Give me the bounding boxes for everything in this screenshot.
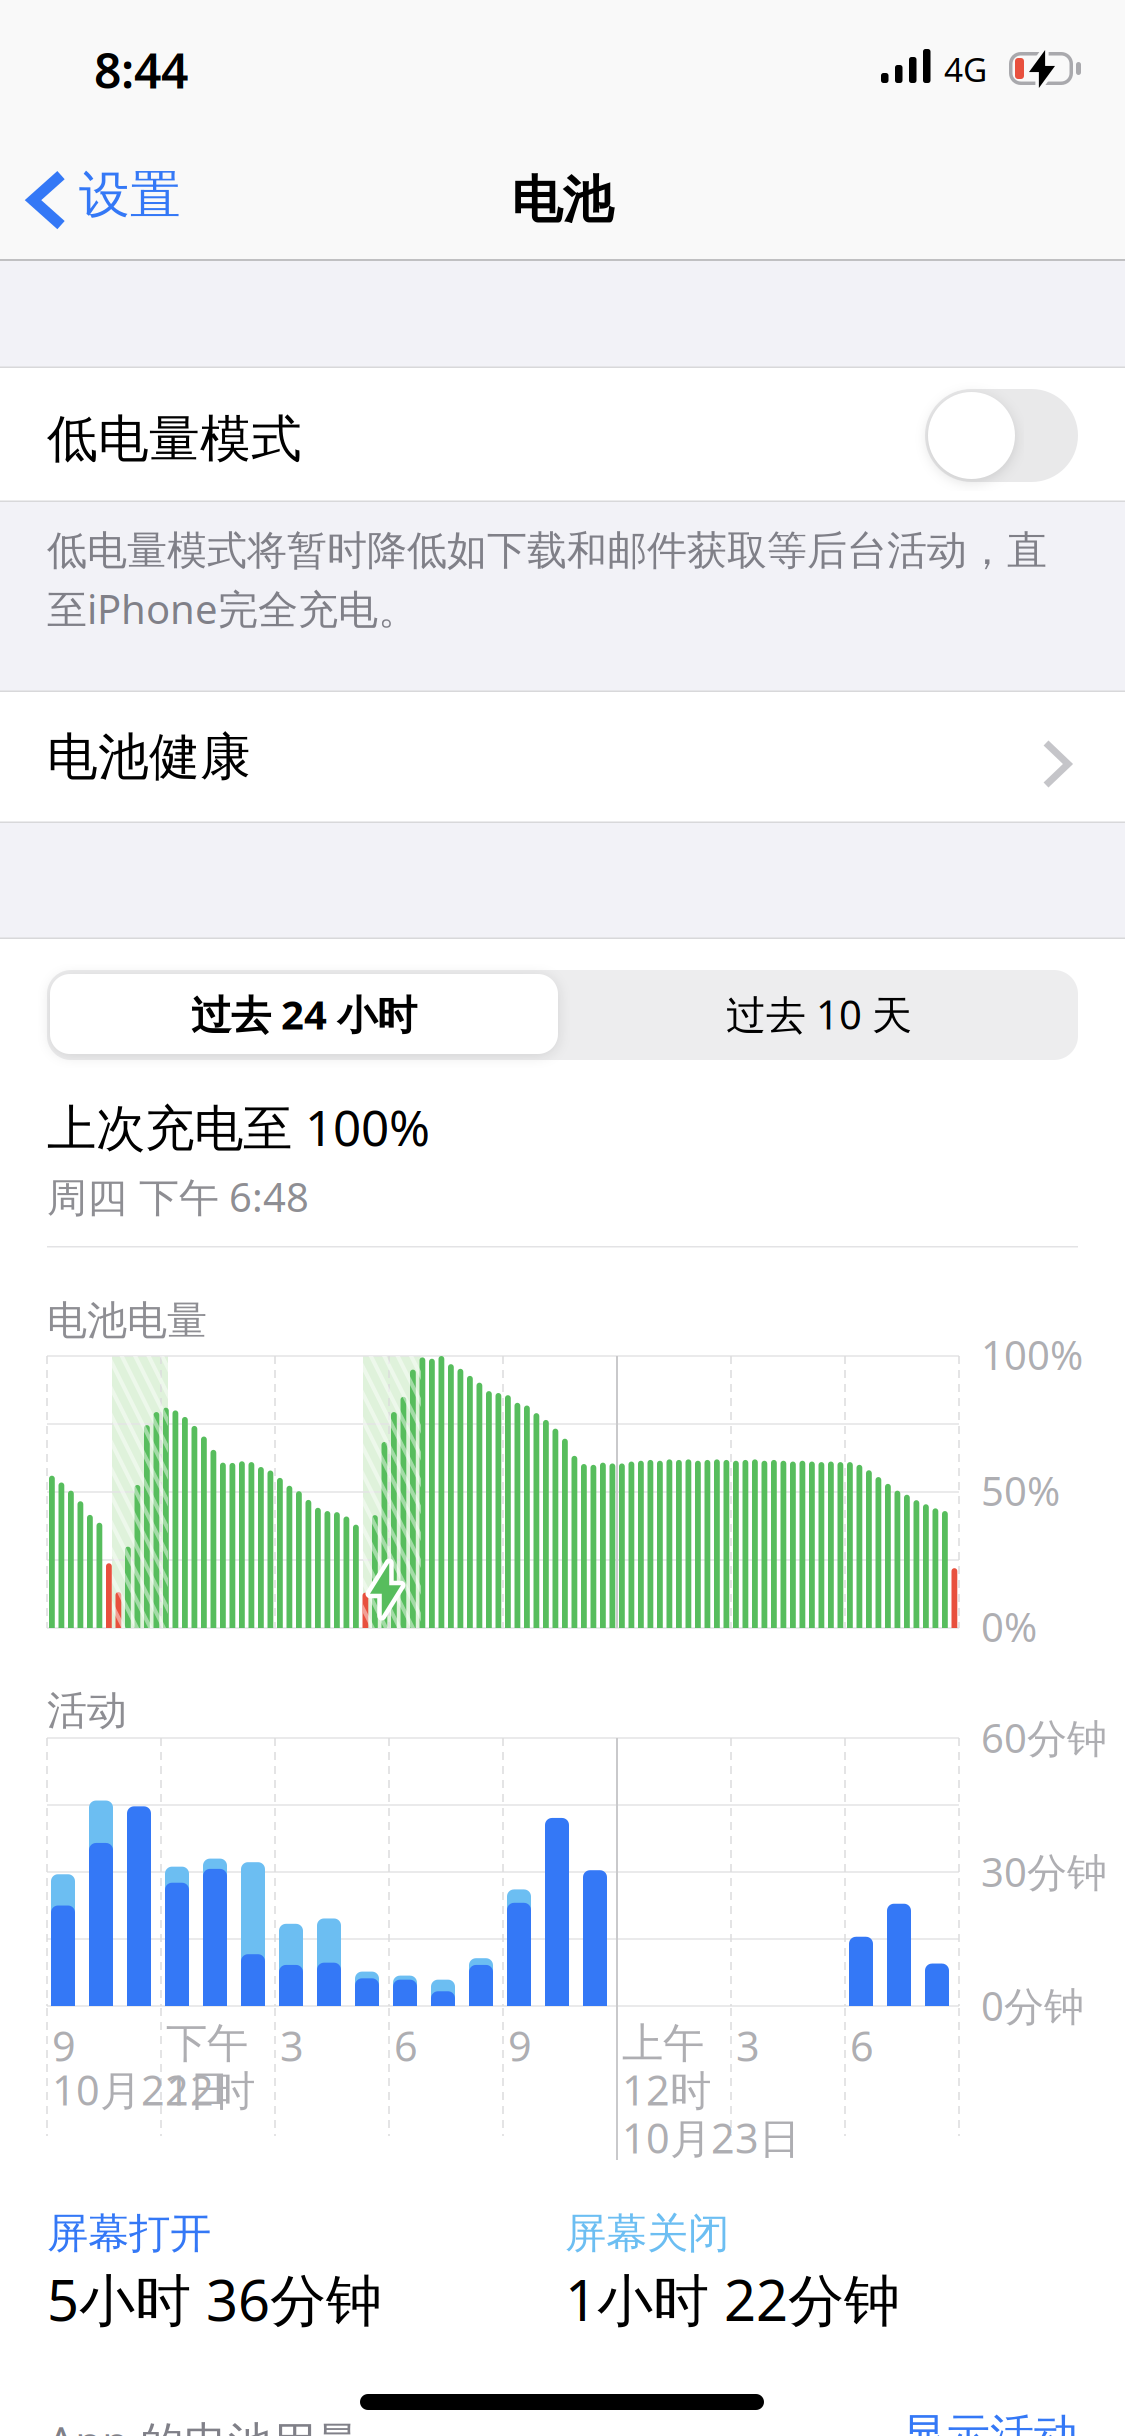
staticText: App 的电池用量 xyxy=(47,2412,360,2436)
staticText: 活动 xyxy=(47,1686,127,1735)
staticText: 12时 xyxy=(166,2062,255,2117)
staticText: 8:44 xyxy=(94,38,188,102)
staticText: 3 xyxy=(280,2018,304,2073)
staticText: 100% xyxy=(981,1328,1083,1381)
staticText: 上次充电至 100% xyxy=(47,1094,430,1159)
staticText: 过去 10 天 xyxy=(726,987,912,1040)
staticText: 低电量模式 xyxy=(47,408,302,470)
button[interactable]: 显示活动 xyxy=(902,2408,1078,2436)
staticText: 周四 下午 6:48 xyxy=(47,1170,309,1223)
staticText: 过去 24 小时 xyxy=(191,987,417,1040)
staticText: 30分钟 xyxy=(981,1845,1107,1898)
staticText: 12时 xyxy=(622,2062,711,2117)
staticText: 至iPhone完全充电。 xyxy=(47,582,418,635)
staticText: 屏幕打开 xyxy=(47,2208,211,2259)
staticText: 4G xyxy=(944,47,987,91)
button[interactable]: 过去 10 天 xyxy=(565,974,1073,1054)
staticText: 下午 xyxy=(166,2018,248,2069)
staticText: 9 xyxy=(52,2018,76,2073)
staticText: 6 xyxy=(394,2018,418,2073)
staticText: 低电量模式将暂时降低如下载和邮件获取等后台活动，直 xyxy=(47,526,1047,575)
staticText: 电池电量 xyxy=(47,1296,207,1345)
staticText: 1小时 22分钟 xyxy=(565,2262,900,2336)
staticText: 60分钟 xyxy=(981,1711,1107,1764)
staticText: 0% xyxy=(981,1600,1037,1653)
button[interactable]: 设置 xyxy=(33,164,181,226)
staticText: 电池 xyxy=(511,169,613,231)
staticText: 屏幕关闭 xyxy=(565,2208,729,2259)
button[interactable]: 过去 24 小时 xyxy=(50,974,558,1054)
staticText: 3 xyxy=(736,2018,760,2073)
staticText: 9 xyxy=(508,2018,532,2073)
staticText: 10月22日 xyxy=(52,2062,230,2117)
staticText: 上午 xyxy=(622,2018,704,2069)
staticText: 0分钟 xyxy=(981,1979,1084,2032)
staticText: 电池健康 xyxy=(47,726,251,788)
staticText: 显示活动 xyxy=(902,2408,1078,2436)
button[interactable]: 低电量模式 xyxy=(925,389,1078,482)
staticText: 50% xyxy=(981,1464,1060,1517)
staticText: 设置 xyxy=(79,164,181,226)
staticText: 6 xyxy=(850,2018,874,2073)
staticText: 10月23日 xyxy=(622,2110,800,2165)
staticText: 5小时 36分钟 xyxy=(47,2262,382,2336)
button[interactable]: 电池健康 xyxy=(0,692,1125,824)
